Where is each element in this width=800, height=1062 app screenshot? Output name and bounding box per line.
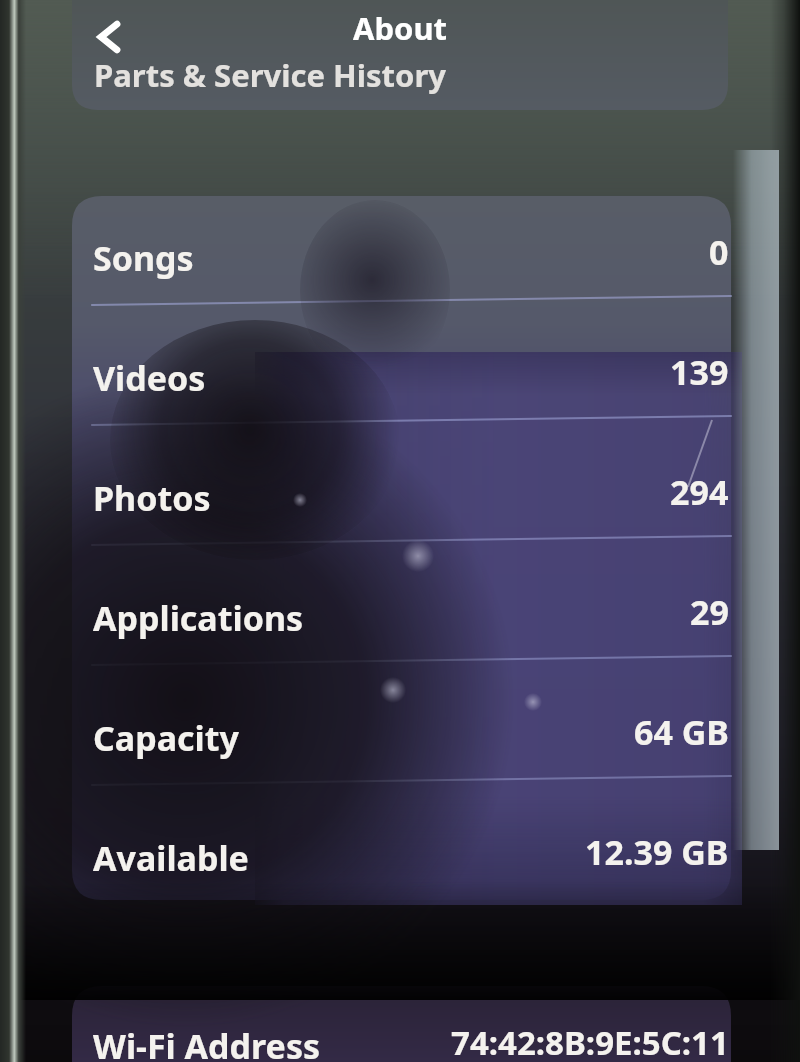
staticText: 294 [670, 469, 729, 515]
button[interactable]: Capacity [72, 676, 731, 796]
staticText: 29 [690, 589, 729, 635]
staticText: 139 [670, 349, 729, 395]
button[interactable]: Videos [72, 316, 731, 436]
button[interactable]: Wi-Fi Address [72, 986, 731, 1062]
staticText: Photos [93, 475, 211, 521]
staticText: 74:42:8B:9E:5C:11 [451, 1020, 729, 1062]
staticText: 12.39 GB [585, 829, 729, 875]
button[interactable]: Photos [72, 436, 731, 556]
staticText: About [0, 7, 800, 51]
staticText: Parts & Service History [94, 54, 446, 96]
button[interactable]: Available [72, 796, 731, 916]
staticText: Songs [93, 235, 194, 281]
staticText: Capacity [93, 715, 239, 761]
staticText: Wi-Fi Address [93, 1023, 321, 1062]
button[interactable]: Parts & Service History [72, 44, 731, 106]
staticText: Applications [93, 595, 304, 641]
button[interactable]: Back [78, 6, 140, 68]
staticText: Videos [93, 355, 206, 401]
button[interactable]: Songs [72, 196, 731, 316]
staticText: 64 GB [634, 709, 729, 755]
button[interactable]: Applications [72, 556, 731, 676]
staticText: 0 [709, 229, 729, 275]
staticText: Available [93, 835, 249, 881]
